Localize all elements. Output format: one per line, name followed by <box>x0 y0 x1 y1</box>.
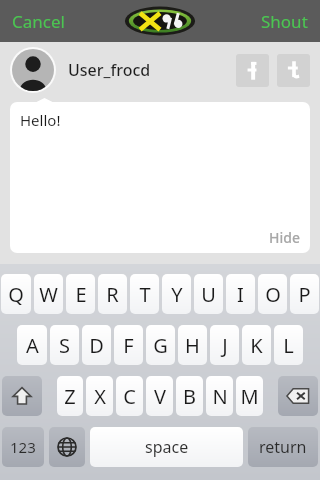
button[interactable]: G <box>146 325 175 365</box>
staticText: R <box>106 281 119 308</box>
staticText: Q <box>8 281 24 308</box>
button[interactable]: U <box>194 274 223 314</box>
staticText: S <box>59 332 70 359</box>
staticText: J <box>222 332 228 359</box>
button[interactable]: E <box>66 274 95 314</box>
button[interactable]: J <box>210 325 239 365</box>
other: X96 logo <box>121 3 199 39</box>
staticText: X <box>94 383 106 410</box>
staticText: E <box>75 281 87 308</box>
staticText: V <box>154 383 166 410</box>
button[interactable]: K <box>242 325 271 365</box>
staticText: space <box>145 436 189 458</box>
button[interactable]: Y <box>162 274 191 314</box>
staticText: F <box>123 332 134 359</box>
button[interactable]: M <box>236 376 263 416</box>
staticText: Shout <box>261 10 308 33</box>
staticText: M <box>240 383 259 410</box>
button[interactable]: P <box>290 274 319 314</box>
staticText: Cancel <box>12 10 65 33</box>
button[interactable]: Z <box>57 376 83 416</box>
button[interactable]: I <box>226 274 255 314</box>
staticText: T <box>139 281 151 308</box>
staticText: C <box>123 383 136 410</box>
staticText: 123 <box>10 437 36 457</box>
button[interactable]: A <box>17 325 47 365</box>
button[interactable]: Avatar <box>12 49 54 91</box>
staticText: Hide <box>269 228 300 247</box>
button[interactable]: Hello! <box>10 102 310 253</box>
button[interactable]: Twitter <box>277 54 310 87</box>
staticText: K <box>250 332 263 359</box>
button[interactable]: space <box>90 427 243 467</box>
button[interactable]: Shift <box>2 376 42 416</box>
button[interactable]: Hide <box>269 228 310 253</box>
button[interactable]: S <box>50 325 79 365</box>
staticText: P <box>298 281 311 308</box>
button[interactable]: Cancel <box>0 4 77 39</box>
staticText: User_frocd <box>68 59 151 81</box>
button[interactable]: Shout <box>249 4 320 39</box>
staticText: L <box>283 332 294 359</box>
staticText: O <box>265 281 281 308</box>
staticText: D <box>89 332 104 359</box>
button[interactable]: T <box>130 274 159 314</box>
button[interactable]: F <box>114 325 143 365</box>
button[interactable]: V <box>146 376 173 416</box>
staticText: B <box>183 383 196 410</box>
staticText: G <box>153 332 168 359</box>
staticText: Y <box>171 281 183 308</box>
button[interactable]: 123 <box>2 427 44 467</box>
button[interactable]: Change language <box>49 427 85 467</box>
staticText: Z <box>64 383 76 410</box>
button[interactable]: C <box>116 376 143 416</box>
button[interactable]: Q <box>1 274 31 314</box>
staticText: U <box>201 281 216 308</box>
button[interactable]: return <box>248 427 318 467</box>
staticText: return <box>259 436 307 458</box>
staticText: N <box>212 383 228 410</box>
staticText: Hello! <box>20 110 61 130</box>
button[interactable]: Backspace <box>278 376 318 416</box>
button[interactable]: D <box>82 325 111 365</box>
button[interactable]: X <box>86 376 113 416</box>
staticText: A <box>26 332 39 359</box>
button[interactable]: B <box>176 376 203 416</box>
staticText: I <box>237 281 244 308</box>
button[interactable]: L <box>274 325 303 365</box>
button[interactable]: Facebook <box>236 54 269 87</box>
button[interactable]: N <box>206 376 233 416</box>
button[interactable]: H <box>178 325 207 365</box>
staticText: W <box>39 281 58 308</box>
button[interactable]: O <box>258 274 287 314</box>
button[interactable]: W <box>34 274 63 314</box>
button[interactable]: R <box>98 274 127 314</box>
staticText: H <box>185 332 200 359</box>
